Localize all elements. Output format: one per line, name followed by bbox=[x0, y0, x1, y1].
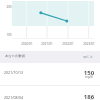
staticText: 150 bbox=[80, 69, 98, 77]
staticText: 2021/10/13 bbox=[4, 70, 24, 75]
button[interactable] bbox=[0, 63, 100, 85]
staticText: 2021/01 bbox=[40, 42, 54, 46]
staticText: 200 bbox=[4, 5, 14, 9]
staticText: 186 bbox=[80, 93, 98, 100]
staticText: 2020/01 bbox=[20, 42, 34, 46]
button[interactable]: 閉じる bbox=[79, 54, 93, 62]
button[interactable] bbox=[0, 86, 100, 100]
staticText: 100 bbox=[4, 33, 14, 37]
staticText: 2021/08/04 bbox=[4, 95, 24, 100]
staticText: 2022/01 bbox=[61, 42, 75, 46]
staticText: あなたの数値 bbox=[5, 54, 26, 58]
staticText: 閉じる bbox=[79, 55, 93, 59]
staticText: mg/dl bbox=[80, 75, 98, 79]
staticText: mg/dl bbox=[80, 99, 98, 100]
staticText: 2023/01 bbox=[82, 42, 96, 46]
